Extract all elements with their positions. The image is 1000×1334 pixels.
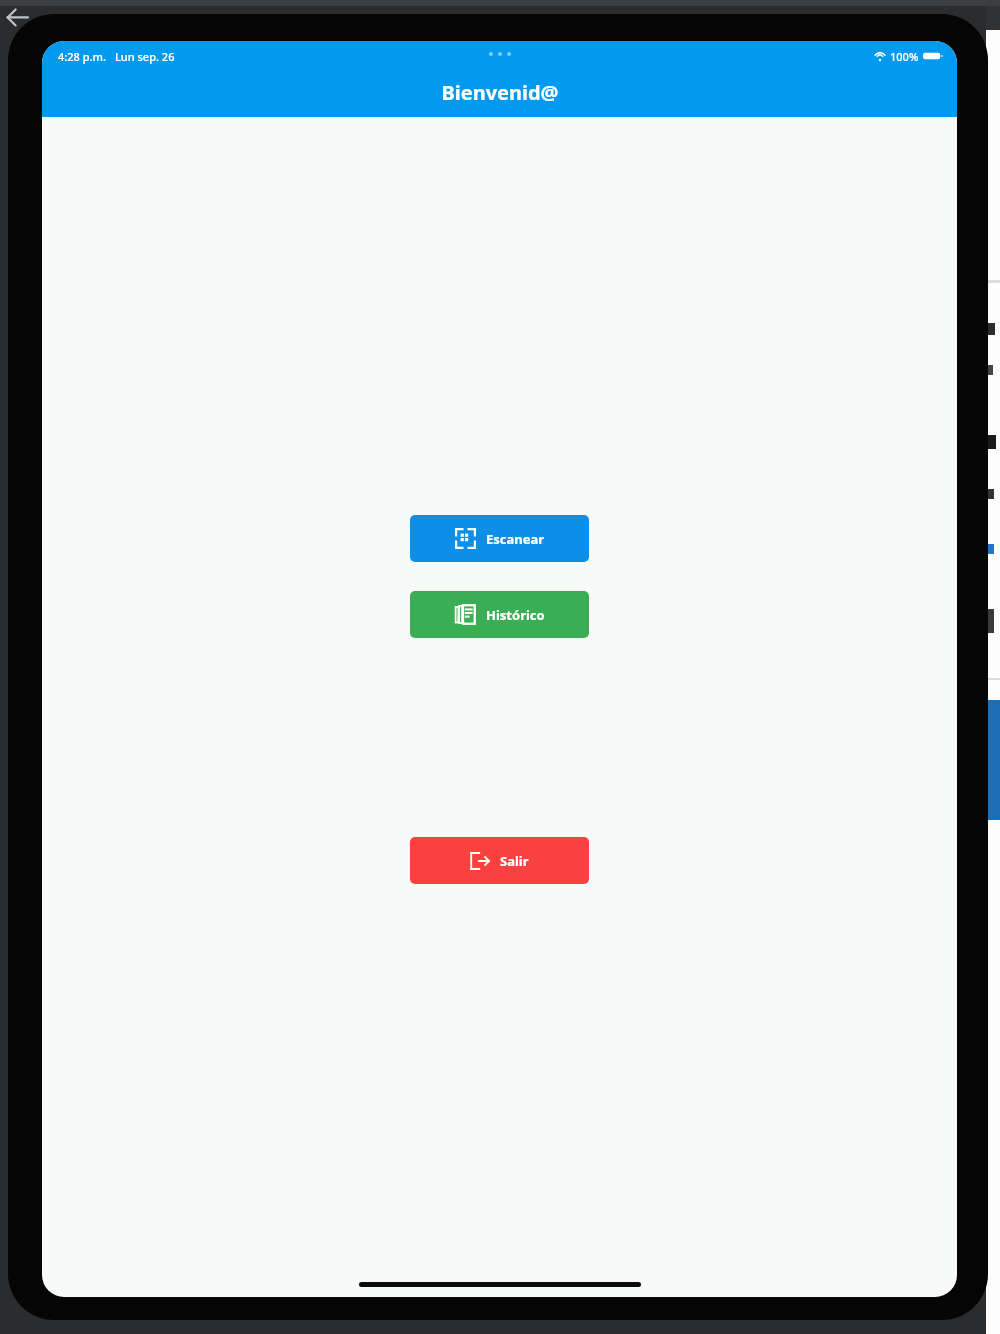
staticText: 100% [890,49,919,64]
button[interactable]: Histórico [410,591,589,638]
staticText: Bienvenid@ [441,79,559,106]
button[interactable]: Salir [410,837,589,884]
staticText: 4:28 p.m. [58,49,106,64]
button[interactable]: Escanear [410,515,589,562]
staticText: Histórico [486,606,545,624]
other: Back [4,6,30,28]
staticText: Salir [500,852,529,870]
staticText: Lun sep. 26 [115,49,175,64]
staticText: Escanear [486,530,545,548]
